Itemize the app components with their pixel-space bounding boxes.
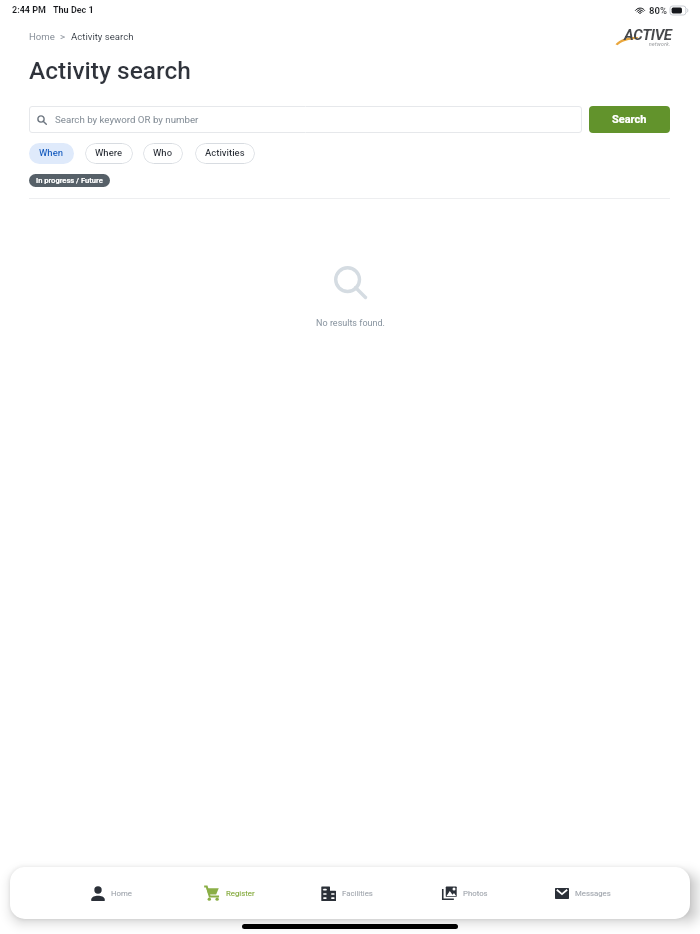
- staticText: >: [60, 31, 66, 42]
- staticText: Activity search: [71, 31, 134, 42]
- staticText: Activities: [205, 147, 245, 158]
- staticText: Messages: [575, 889, 611, 898]
- staticText: Search: [612, 113, 647, 126]
- button[interactable]: ACTIVE Network home: [615, 26, 671, 48]
- button[interactable]: In progress / Future: [29, 174, 110, 187]
- staticText: Who: [153, 147, 173, 158]
- staticText: Activity search: [29, 56, 191, 85]
- button[interactable]: Where: [85, 143, 133, 164]
- staticText: ACTIVE: [624, 26, 672, 44]
- button[interactable]: Activities: [195, 143, 255, 164]
- button[interactable]: Facilities: [288, 867, 406, 919]
- button[interactable]: Search: [589, 106, 670, 133]
- staticText: Photos: [463, 889, 488, 898]
- staticText: Home: [111, 889, 132, 898]
- staticText: Thu Dec 1: [53, 5, 94, 16]
- staticText: 80%: [649, 5, 667, 16]
- staticText: Facilities: [342, 889, 373, 898]
- button[interactable]: Photos: [406, 867, 524, 919]
- button[interactable]: Home: [52, 867, 170, 919]
- button[interactable]: When: [29, 143, 74, 164]
- button[interactable]: Home: [29, 31, 55, 42]
- staticText: network.: [649, 41, 671, 47]
- button[interactable]: Messages: [524, 867, 642, 919]
- staticText: Register: [226, 889, 255, 898]
- staticText: No results found.: [316, 318, 385, 329]
- staticText: Search by keyword OR by number: [55, 114, 199, 125]
- staticText: In progress / Future: [36, 176, 103, 185]
- staticText: Where: [95, 147, 123, 158]
- button[interactable]: Register: [170, 867, 288, 919]
- button[interactable]: Search by keyword OR by number: [29, 106, 582, 133]
- staticText: 2:44 PM: [12, 5, 46, 16]
- button[interactable]: Who: [143, 143, 183, 164]
- staticText: When: [39, 147, 64, 158]
